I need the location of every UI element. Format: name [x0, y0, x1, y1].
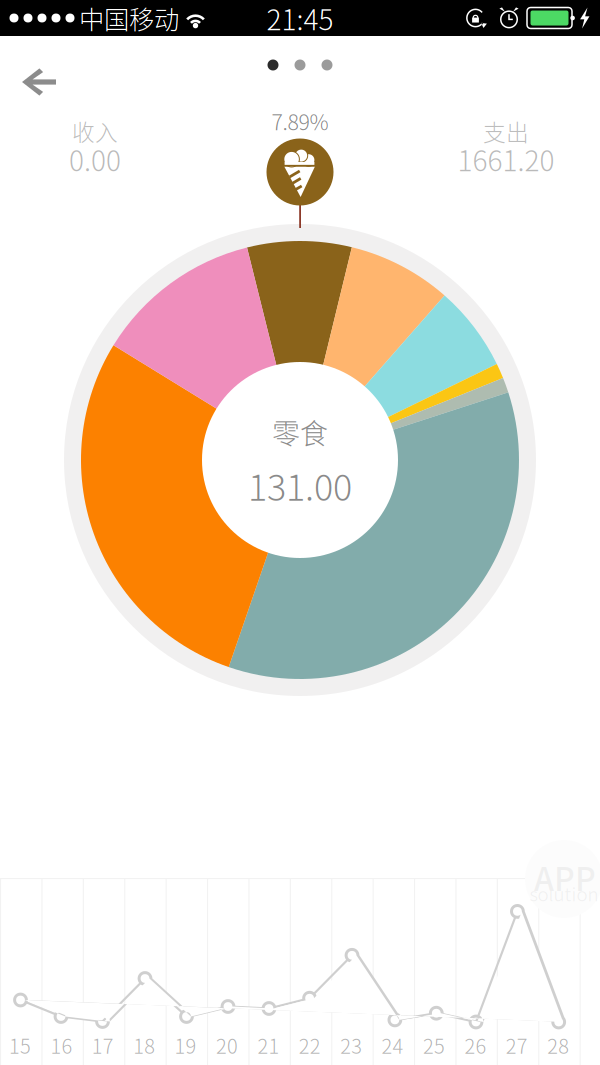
staticText: 26 [464, 1030, 486, 1059]
staticText: 中国移动 [79, 0, 179, 36]
staticText: 1661.20 [457, 139, 554, 179]
staticText: 23 [340, 1030, 362, 1059]
staticText: 27 [506, 1030, 528, 1059]
staticText: 24 [382, 1030, 404, 1059]
staticText: APP [534, 854, 596, 900]
staticText: 21:45 [266, 0, 333, 38]
staticText: 16 [50, 1030, 72, 1059]
staticText: 20 [216, 1030, 238, 1059]
staticText: 7.89% [271, 106, 328, 136]
staticText: 19 [175, 1030, 197, 1059]
staticText: 21 [257, 1030, 279, 1059]
staticText: solution [529, 879, 598, 906]
staticText: 支出 [483, 115, 529, 147]
staticText: 零食 [272, 412, 328, 452]
staticText: 收入 [72, 115, 118, 147]
staticText: 0.00 [69, 139, 121, 179]
staticText: 131.00 [248, 459, 352, 511]
button[interactable]: Back [9, 58, 71, 106]
staticText: 15 [9, 1030, 31, 1059]
staticText: 28 [547, 1030, 569, 1059]
staticText: 17 [92, 1030, 114, 1059]
staticText: 18 [133, 1030, 155, 1059]
staticText: 25 [423, 1030, 445, 1059]
staticText: 22 [299, 1030, 321, 1059]
